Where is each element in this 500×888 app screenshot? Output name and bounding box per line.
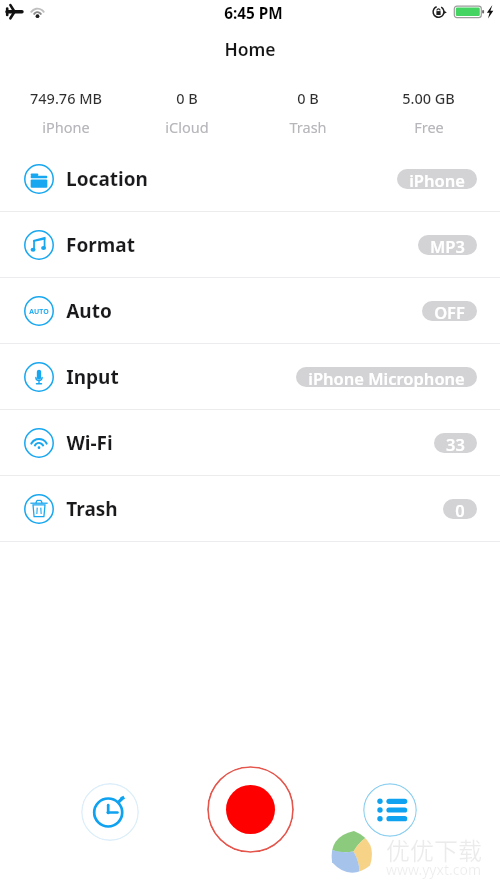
staticText: 优优下载 [386, 832, 482, 867]
button[interactable]: Trash [0, 476, 500, 541]
staticText: 0 B [176, 88, 198, 108]
staticText: Wi-Fi [66, 430, 113, 456]
staticText: 33 [446, 433, 465, 453]
staticText: 749.76 MB [30, 88, 102, 108]
button[interactable]: Input [0, 344, 500, 409]
staticText: 0 B [297, 88, 319, 108]
staticText: Trash [66, 496, 118, 522]
staticText: 0 [455, 499, 465, 519]
staticText: Free [414, 117, 444, 137]
staticText: Trash [289, 117, 327, 137]
button[interactable]: Recordings [363, 783, 417, 837]
staticText: Format [66, 232, 135, 258]
staticText: iCloud [165, 117, 209, 137]
button[interactable]: Record [207, 766, 294, 853]
staticText: Auto [66, 298, 112, 324]
button[interactable]: Location [0, 146, 500, 211]
staticText: 5.00 GB [402, 88, 455, 108]
staticText: AUTO [29, 307, 49, 317]
staticText: 6:45 PM [224, 3, 283, 24]
staticText: www.yyxt.com [386, 860, 481, 879]
staticText: MP3 [430, 235, 465, 255]
staticText: iPhone Microphone [308, 367, 465, 387]
staticText: Home [224, 37, 276, 61]
button[interactable]: Wi-Fi [0, 410, 500, 475]
button[interactable]: AUTO [0, 278, 500, 343]
button[interactable]: Format [0, 212, 500, 277]
staticText: OFF [434, 301, 465, 321]
staticText: iPhone [42, 117, 90, 137]
staticText: Input [66, 364, 119, 390]
staticText: iPhone [409, 169, 465, 189]
button[interactable]: Timer [81, 783, 139, 841]
staticText: Location [66, 166, 148, 192]
